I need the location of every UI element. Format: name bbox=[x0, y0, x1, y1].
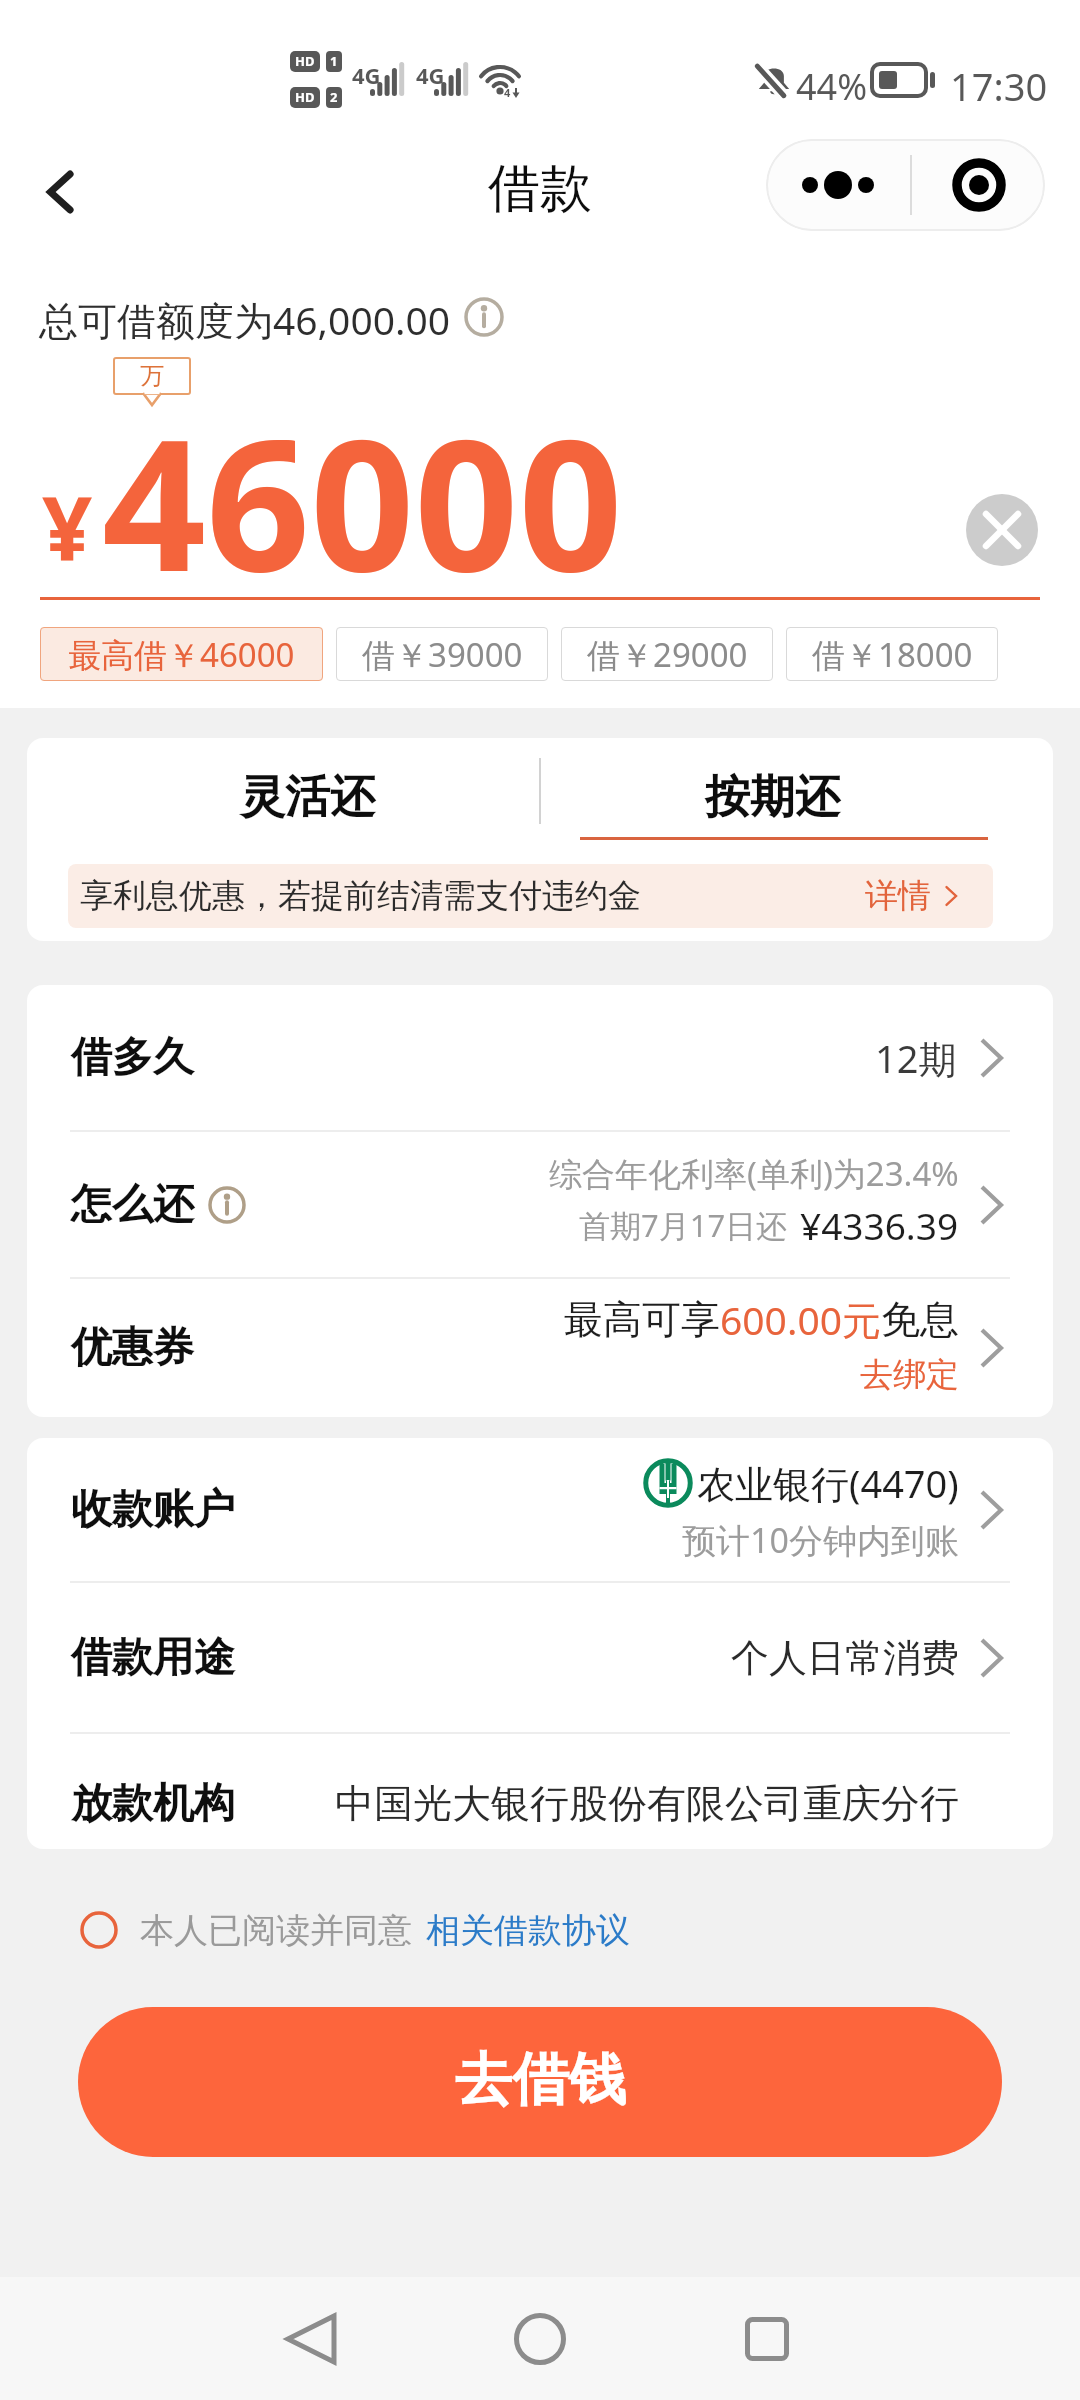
staticText: 优惠券 bbox=[71, 1322, 194, 1374]
staticText: 借￥29000 bbox=[587, 632, 748, 677]
staticText: 首期7月17日还 bbox=[579, 1204, 788, 1246]
staticText: 借多久 bbox=[71, 1032, 194, 1084]
button[interactable]: Recent apps bbox=[707, 2279, 827, 2399]
button[interactable]: 借￥39000 bbox=[336, 627, 548, 681]
staticText: HD bbox=[295, 88, 315, 106]
staticText: 最高借￥46000 bbox=[68, 632, 295, 677]
staticText: 46000 bbox=[102, 376, 623, 624]
staticText: 4G bbox=[352, 60, 381, 90]
button[interactable]: 借款用途 bbox=[27, 1583, 1053, 1732]
button[interactable]: Home bbox=[480, 2279, 600, 2399]
staticText: 去借钱 bbox=[455, 2044, 626, 2116]
staticText: 怎么还 bbox=[71, 1179, 194, 1231]
staticText: 相关借款协议 bbox=[426, 1909, 630, 1952]
staticText: 17:30 bbox=[950, 60, 1048, 112]
staticText: 借￥39000 bbox=[362, 632, 523, 677]
button[interactable]: 优惠券 bbox=[27, 1279, 1053, 1417]
button[interactable]: Back bbox=[250, 2279, 370, 2399]
staticText: 借￥18000 bbox=[812, 632, 973, 677]
button[interactable]: Back bbox=[22, 154, 98, 230]
staticText: 综合年化利率(单利)为23.4% bbox=[549, 1151, 959, 1196]
staticText: 灵活还 bbox=[240, 769, 375, 826]
staticText: ¥ bbox=[42, 467, 93, 587]
staticText: 12期 bbox=[875, 1032, 957, 1084]
button[interactable]: 借多久 bbox=[27, 985, 1053, 1130]
staticText: 详情 bbox=[865, 875, 931, 917]
staticText: 免息 bbox=[881, 1295, 959, 1344]
button[interactable]: More options bbox=[766, 139, 910, 231]
staticText: 放款机构 bbox=[71, 1778, 235, 1830]
staticText: 收款账户 bbox=[71, 1484, 235, 1536]
staticText: 4G bbox=[416, 60, 445, 90]
staticText: 享利息优惠，若提前结清需支付违约金 bbox=[80, 875, 641, 917]
button[interactable]: 放款机构 bbox=[27, 1734, 1053, 1849]
button[interactable]: 最高借￥46000 bbox=[40, 627, 323, 681]
staticText: 按期还 bbox=[705, 769, 840, 826]
staticText: 2 bbox=[330, 88, 338, 106]
staticText: 总可借额度为46,000.00 bbox=[39, 293, 451, 346]
staticText: 本人已阅读并同意 bbox=[140, 1909, 412, 1952]
button[interactable]: 本人已阅读并同意 bbox=[80, 1902, 630, 1958]
staticText: 万 bbox=[140, 361, 164, 391]
button[interactable]: 怎么还 bbox=[27, 1132, 1053, 1277]
staticText: 农业银行(4470) bbox=[697, 1457, 959, 1509]
button[interactable]: 借￥29000 bbox=[561, 627, 773, 681]
button[interactable]: Close mini program bbox=[912, 139, 1045, 231]
staticText: 去绑定 bbox=[860, 1354, 959, 1396]
staticText: 中国光大银行股份有限公司重庆分行 bbox=[335, 1779, 959, 1828]
staticText: 借款用途 bbox=[71, 1632, 235, 1684]
button[interactable]: 按期还 bbox=[540, 738, 1053, 850]
staticText: ¥4336.39 bbox=[800, 1200, 959, 1250]
button[interactable]: 借￥18000 bbox=[786, 627, 998, 681]
staticText: 44% bbox=[796, 62, 868, 111]
staticText: 借款 bbox=[488, 156, 592, 222]
staticText: 4 bbox=[504, 85, 511, 100]
staticText: HD bbox=[295, 52, 315, 70]
staticText: 预计10分钟内到账 bbox=[682, 1517, 959, 1563]
button[interactable]: 灵活还 bbox=[27, 738, 540, 850]
button[interactable]: 去借钱 bbox=[78, 2007, 1002, 2157]
staticText: 1 bbox=[330, 52, 338, 70]
button[interactable]: 享利息优惠，若提前结清需支付违约金 bbox=[68, 864, 993, 928]
button[interactable]: Clear amount bbox=[966, 494, 1038, 566]
button[interactable]: 收款账户 bbox=[27, 1438, 1053, 1581]
staticText: 最高可享 bbox=[564, 1295, 720, 1344]
staticText: 个人日常消费 bbox=[731, 1634, 959, 1682]
staticText: 600.00元 bbox=[720, 1293, 881, 1346]
